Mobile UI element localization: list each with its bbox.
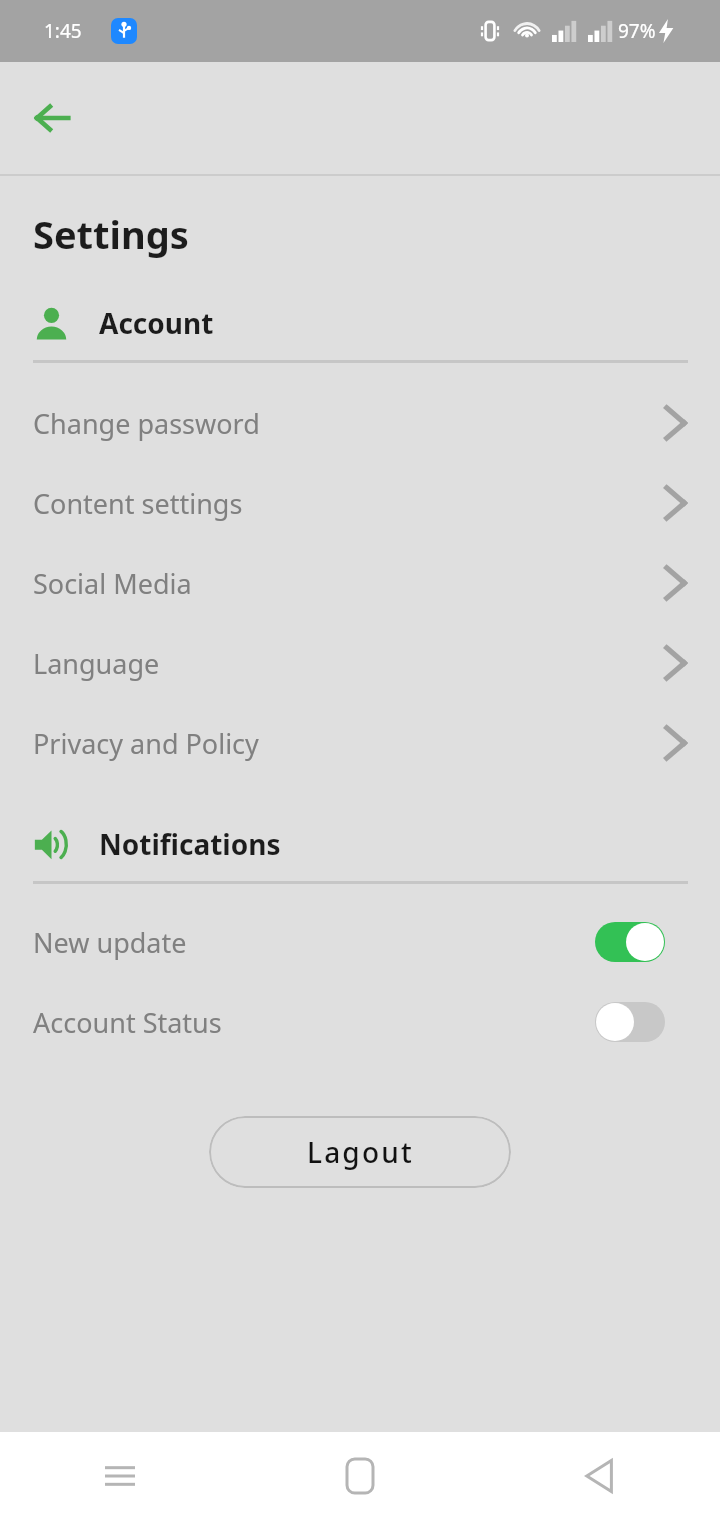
button[interactable]: Back xyxy=(22,88,82,148)
button[interactable]: Recent apps xyxy=(0,1432,240,1520)
staticText: Lagout xyxy=(307,1133,414,1171)
button[interactable]: Lagout xyxy=(209,1116,511,1188)
button[interactable]: Social Media xyxy=(0,543,720,623)
staticText: Social Media xyxy=(33,565,192,602)
staticText: Change password xyxy=(33,405,260,442)
staticText: Language xyxy=(33,645,160,682)
staticText: Notifications xyxy=(99,825,281,863)
button[interactable]: Change password xyxy=(0,383,720,463)
button[interactable]: New update xyxy=(0,902,720,982)
button[interactable]: On xyxy=(595,922,665,962)
staticText: Privacy and Policy xyxy=(33,725,259,762)
staticText: New update xyxy=(33,924,187,961)
staticText: 1:45 xyxy=(44,18,82,44)
staticText: Account xyxy=(99,304,214,342)
button[interactable]: Language xyxy=(0,623,720,703)
button[interactable]: Off xyxy=(595,1002,665,1042)
staticText: 97% xyxy=(618,18,656,44)
staticText: Settings xyxy=(33,208,189,260)
button[interactable]: Account Status xyxy=(0,982,720,1062)
button[interactable]: Privacy and Policy xyxy=(0,703,720,783)
staticText: Content settings xyxy=(33,485,243,522)
button[interactable]: Back xyxy=(480,1432,720,1520)
staticText: Account Status xyxy=(33,1004,222,1041)
button[interactable]: Content settings xyxy=(0,463,720,543)
button[interactable]: Home xyxy=(240,1432,480,1520)
